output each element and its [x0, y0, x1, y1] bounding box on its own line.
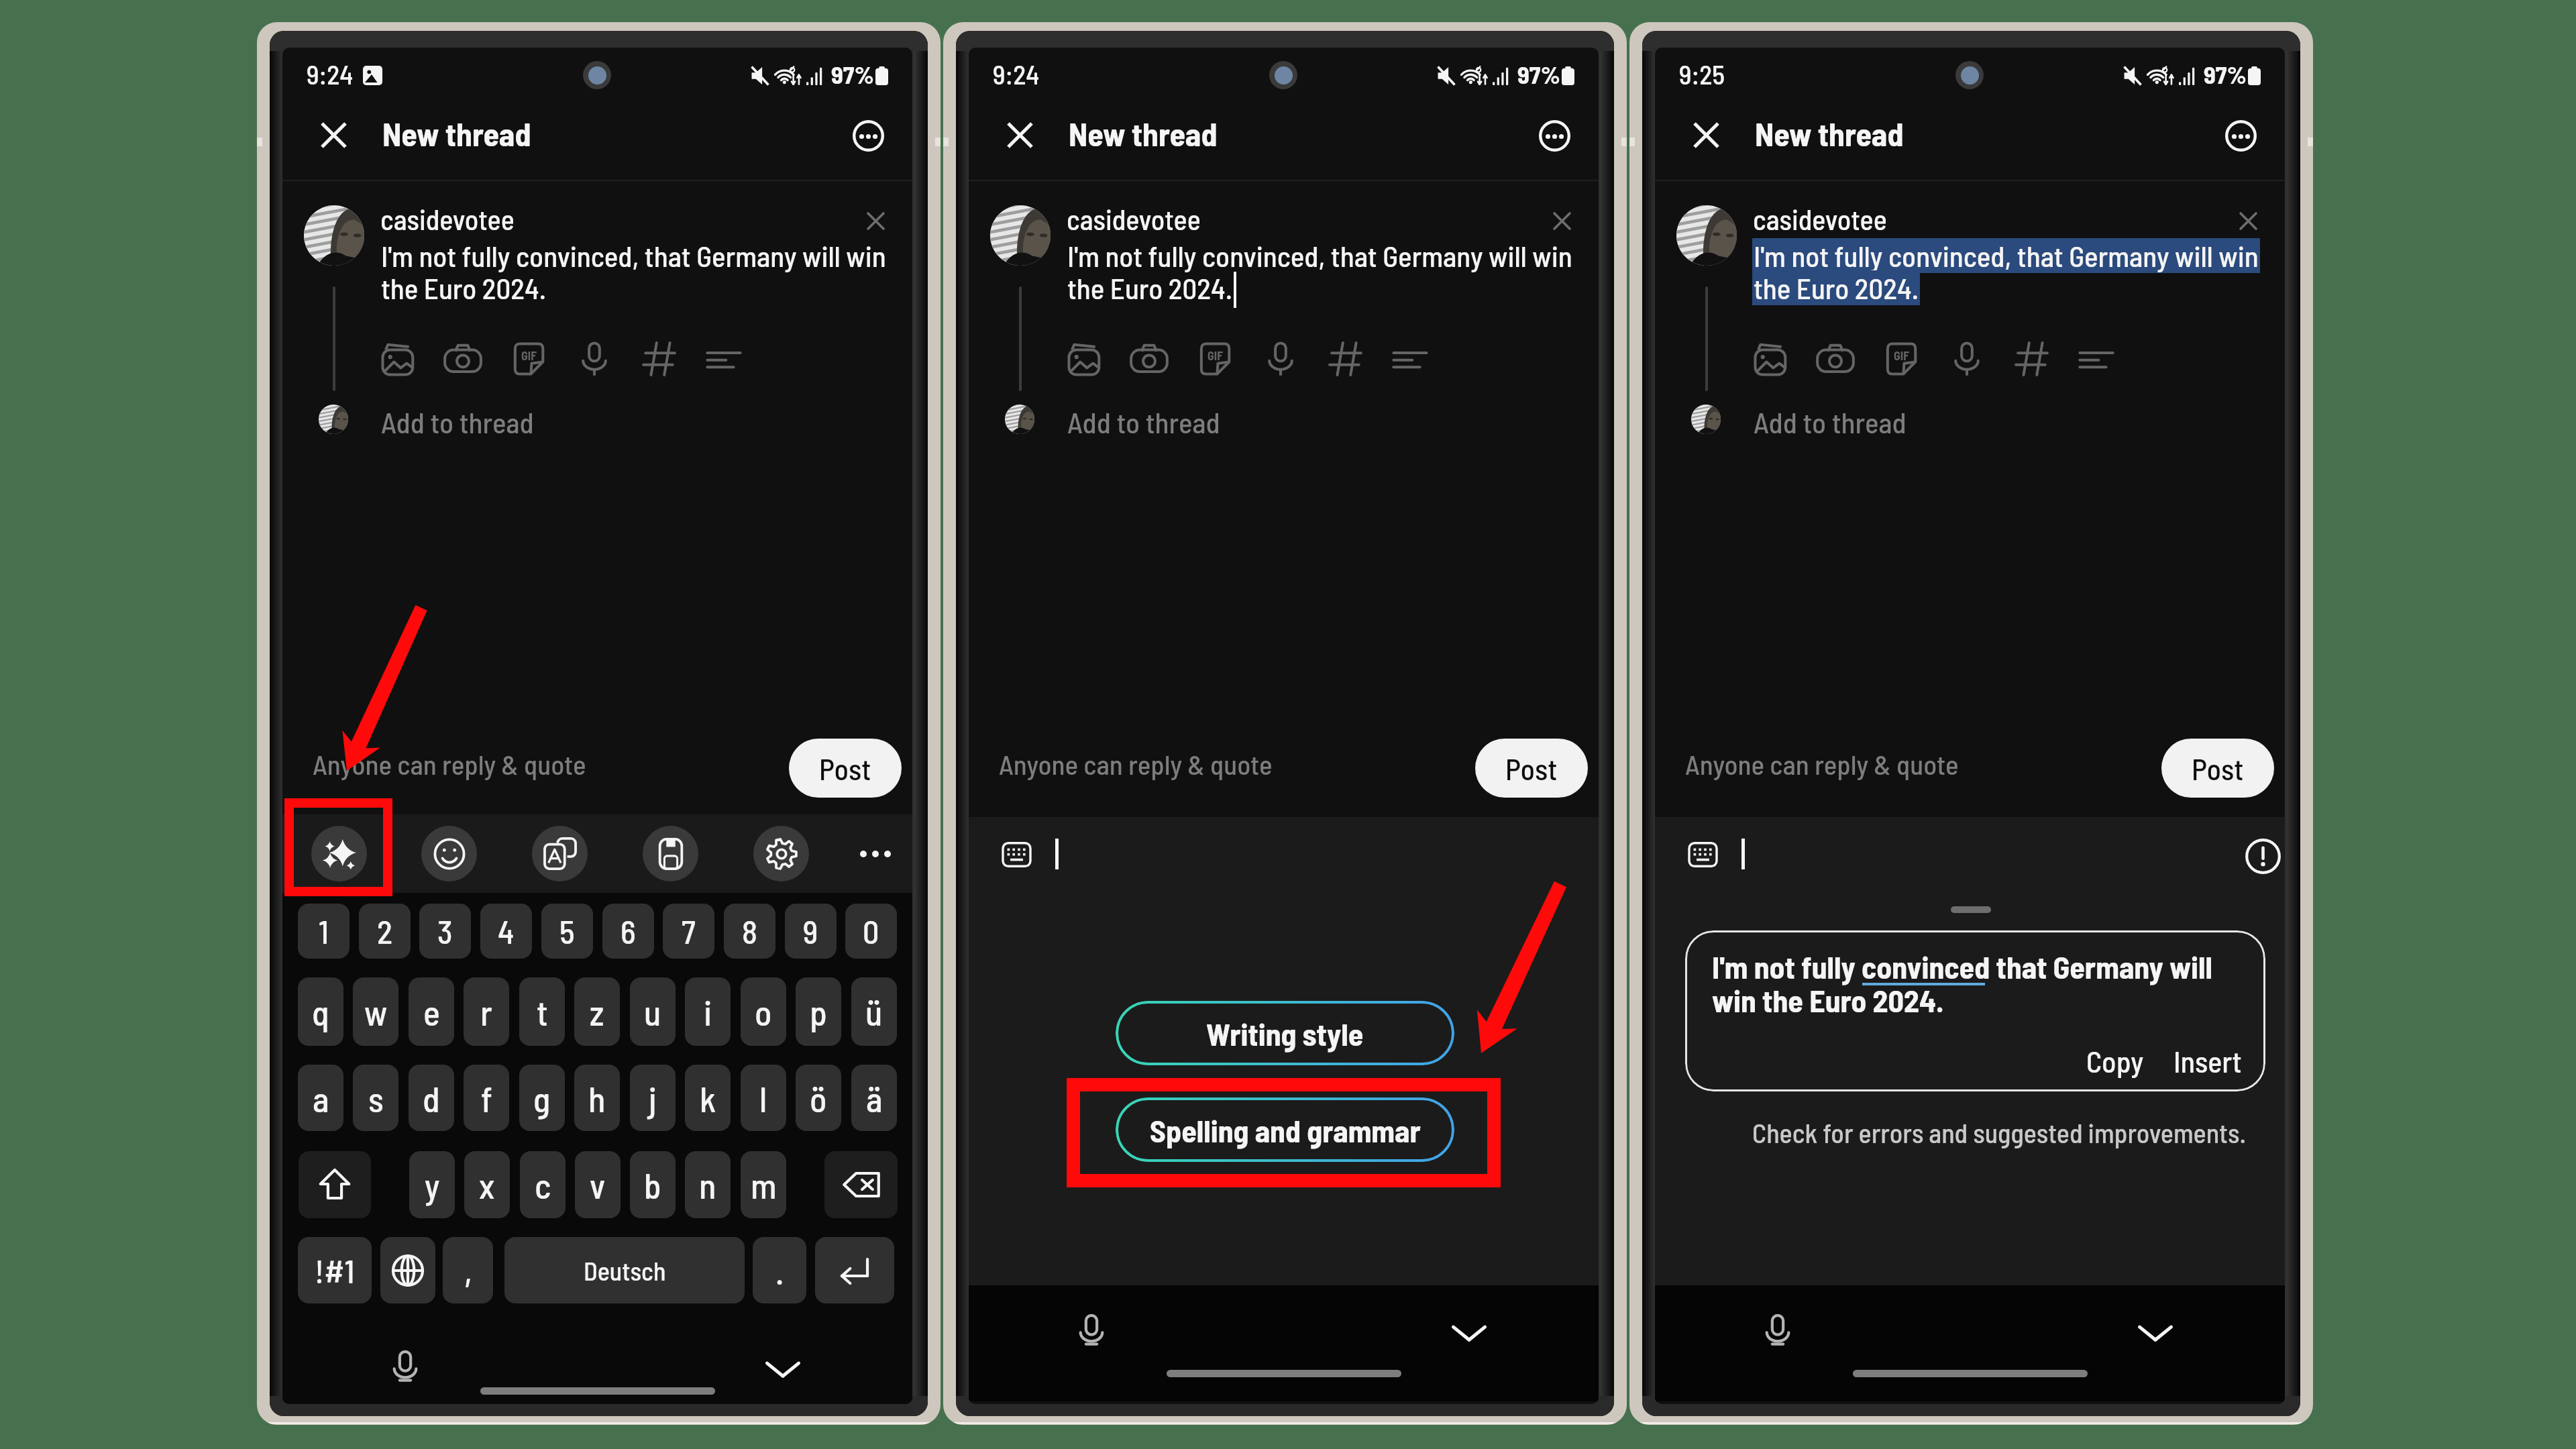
button[interactable]: 6	[602, 904, 654, 959]
button[interactable]: Add to thread	[996, 399, 1572, 442]
button[interactable]: Voice	[1258, 337, 1303, 381]
button[interactable]: h	[574, 1065, 620, 1131]
button[interactable]: Insert	[2167, 1036, 2249, 1085]
button[interactable]: c	[520, 1151, 566, 1218]
button[interactable]: .	[753, 1237, 806, 1303]
button[interactable]: Hide keyboard	[2135, 1312, 2176, 1352]
button[interactable]: ,	[443, 1237, 493, 1303]
button[interactable]: b	[630, 1151, 676, 1218]
button[interactable]: Remove	[2230, 203, 2266, 239]
button[interactable]: Voice input	[385, 1346, 425, 1386]
button[interactable]: Voice	[1945, 337, 1989, 381]
button[interactable]: ü	[851, 977, 897, 1046]
button[interactable]: 4	[480, 904, 532, 959]
button[interactable]: Voice input	[1071, 1309, 1112, 1350]
staticText: Writing style	[1206, 1015, 1364, 1052]
button[interactable]: More options	[2219, 114, 2262, 157]
button[interactable]: z	[574, 977, 620, 1046]
button[interactable]: Spelling and grammar	[1116, 1097, 1454, 1162]
button[interactable]: AI writing assist	[311, 826, 367, 881]
button[interactable]: Gallery	[1749, 337, 1793, 381]
button[interactable]: enter	[815, 1237, 894, 1303]
button[interactable]: Voice input	[1758, 1309, 1798, 1350]
button[interactable]: f	[464, 1065, 509, 1131]
staticText: Anyone can reply & quote	[313, 747, 586, 780]
button[interactable]: v	[575, 1151, 621, 1218]
button[interactable]: Poll	[702, 337, 746, 381]
button[interactable]: Poll	[2074, 337, 2118, 381]
button[interactable]: Poll	[1388, 337, 1432, 381]
button[interactable]: backspace	[824, 1151, 898, 1218]
button[interactable]: Translate	[532, 826, 588, 881]
button[interactable]: l	[741, 1065, 786, 1131]
button[interactable]: i	[685, 977, 731, 1046]
button[interactable]: shift	[299, 1151, 371, 1218]
button[interactable]: r	[464, 977, 509, 1046]
button[interactable]: Add to thread	[1682, 399, 2259, 442]
button[interactable]: Close	[1684, 113, 1727, 156]
button[interactable]: s	[353, 1065, 398, 1131]
button[interactable]: Hide keyboard	[1449, 1312, 1489, 1352]
button[interactable]: Gallery	[376, 337, 421, 381]
button[interactable]: n	[685, 1151, 731, 1218]
button[interactable]: globe	[380, 1237, 435, 1303]
button[interactable]: ä	[851, 1065, 897, 1131]
button[interactable]: Remove	[857, 203, 894, 239]
button[interactable]: d	[409, 1065, 454, 1131]
button[interactable]: Hashtag	[1324, 337, 1368, 381]
button[interactable]: g	[519, 1065, 565, 1131]
button[interactable]: Remove	[1544, 203, 1580, 239]
button[interactable]: 1	[298, 904, 350, 959]
staticText: j	[649, 1077, 657, 1119]
button[interactable]: 5	[541, 904, 593, 959]
button[interactable]: Deutsch	[504, 1237, 745, 1303]
button[interactable]: Info	[2241, 835, 2284, 877]
button[interactable]: Post	[1475, 739, 1588, 798]
button[interactable]: 0	[845, 904, 897, 959]
button[interactable]: e	[409, 977, 454, 1046]
button[interactable]: Clipboard	[643, 826, 698, 881]
button[interactable]: Camera	[441, 337, 485, 381]
button[interactable]: ö	[796, 1065, 841, 1131]
button[interactable]: Hide keyboard	[763, 1348, 803, 1389]
button[interactable]: GIF	[506, 337, 551, 381]
button[interactable]: Hashtag	[638, 337, 682, 381]
button[interactable]: More options	[847, 114, 890, 157]
button[interactable]: a	[298, 1065, 343, 1131]
button[interactable]: Post	[2161, 739, 2274, 798]
button[interactable]: Emoji	[421, 826, 477, 881]
button[interactable]: j	[630, 1065, 676, 1131]
button[interactable]: 7	[663, 904, 714, 959]
button[interactable]: Copy	[2080, 1036, 2151, 1085]
button[interactable]: Close	[312, 113, 355, 156]
button[interactable]: m	[741, 1151, 786, 1218]
button[interactable]: !#1	[298, 1237, 372, 1303]
button[interactable]: Gallery	[1063, 337, 1107, 381]
button[interactable]: Hashtag	[2010, 337, 2055, 381]
button[interactable]: w	[353, 977, 398, 1046]
button[interactable]: 8	[724, 904, 775, 959]
button[interactable]: GIF	[1879, 337, 1923, 381]
button[interactable]: t	[519, 977, 565, 1046]
button[interactable]: 2	[359, 904, 411, 959]
button[interactable]: Post	[789, 739, 902, 798]
button[interactable]: 3	[419, 904, 471, 959]
button[interactable]: Add to thread	[309, 399, 886, 442]
button[interactable]: Writing style	[1116, 1001, 1454, 1065]
button[interactable]: x	[464, 1151, 510, 1218]
button[interactable]: 9	[785, 904, 837, 959]
button[interactable]: o	[741, 977, 786, 1046]
button[interactable]: k	[685, 1065, 731, 1131]
button[interactable]: Voice	[572, 337, 616, 381]
button[interactable]: GIF	[1193, 337, 1237, 381]
button[interactable]: u	[630, 977, 676, 1046]
button[interactable]: More options	[1533, 114, 1576, 157]
button[interactable]: Camera	[1127, 337, 1171, 381]
button[interactable]: q	[298, 977, 343, 1046]
button[interactable]: y	[409, 1151, 455, 1218]
button[interactable]: p	[796, 977, 841, 1046]
button[interactable]: More	[849, 827, 902, 881]
button[interactable]: Camera	[1813, 337, 1858, 381]
button[interactable]: Settings	[753, 826, 809, 881]
button[interactable]: Close	[998, 113, 1041, 156]
